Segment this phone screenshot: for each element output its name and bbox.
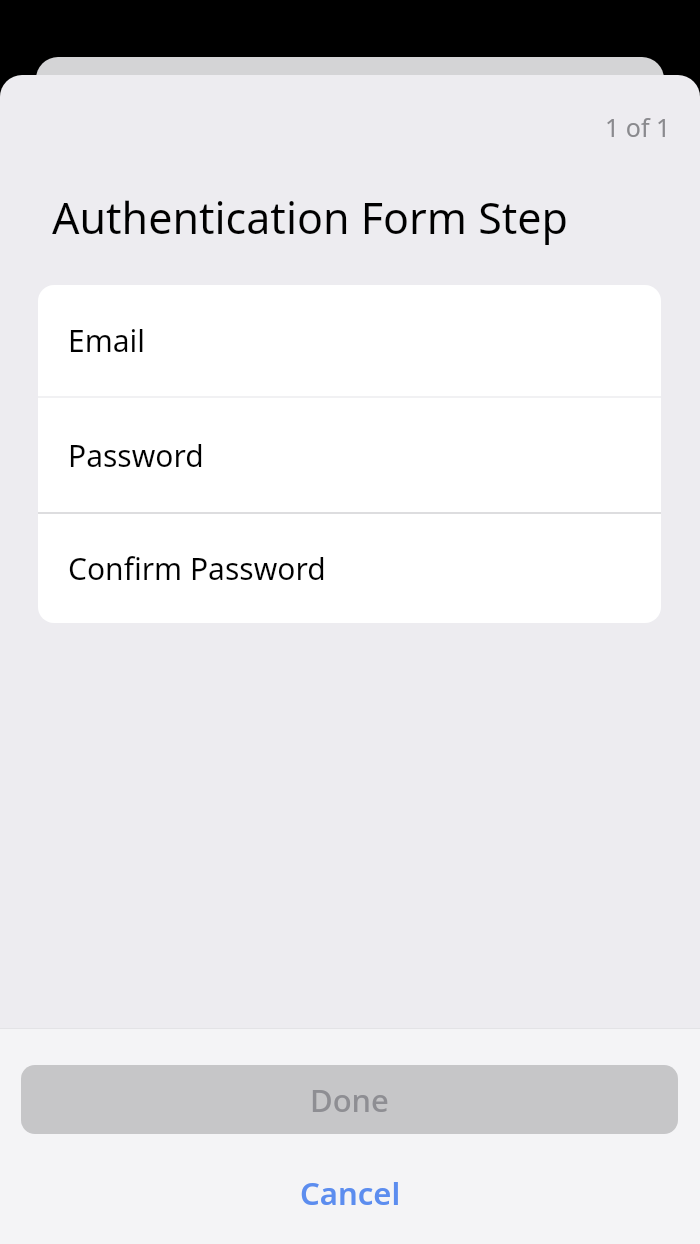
button[interactable]: Done [21, 1065, 678, 1134]
button[interactable]: Confirm Password [38, 514, 661, 623]
staticText: Cancel [300, 1172, 401, 1214]
staticText: Authentication Form Step [52, 188, 569, 247]
staticText: Done [310, 1079, 389, 1121]
staticText: Email [68, 320, 146, 361]
button[interactable]: Password [38, 398, 661, 512]
staticText: Confirm Password [68, 548, 326, 589]
staticText: 1 of 1 [605, 110, 671, 144]
button[interactable]: Email [38, 285, 661, 396]
button[interactable]: Cancel [0, 1162, 700, 1224]
staticText: Password [68, 435, 204, 476]
